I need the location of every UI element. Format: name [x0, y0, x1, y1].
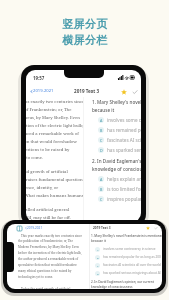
staticText: 1. Mary Shelley's novel Frankenstein is …	[91, 234, 162, 243]
button[interactable]: 2019-2021	[29, 88, 55, 94]
button[interactable]: A	[92, 174, 141, 184]
staticText: C	[100, 197, 103, 202]
staticText: fascinates AI scientists all over the wo…	[103, 263, 161, 267]
staticText: This year marks exactly two centuries si…	[26, 99, 83, 161]
staticText: B	[97, 256, 99, 259]
staticText: D	[97, 272, 99, 275]
staticText: 2019-2021	[27, 226, 43, 230]
staticText: 2. In David Eagleman's opinion, our curr…	[92, 158, 141, 172]
staticText: B	[100, 128, 103, 133]
staticText: has remained popular for as long as 200 …	[107, 127, 141, 133]
staticText: helps explain artificial intelligence	[107, 176, 141, 182]
staticText: involves some controversy in science	[107, 117, 141, 123]
staticText: 2019-2021	[33, 88, 54, 94]
staticText: Today, the rapid growth of artificial in…	[18, 287, 84, 289]
button[interactable]: Favourite	[119, 87, 128, 96]
button[interactable]: C	[92, 135, 141, 145]
staticText: 19:57	[33, 75, 45, 81]
button[interactable]: Mark as done	[153, 225, 159, 231]
staticText: 2. In David Eagleman's opinion, our curr…	[91, 280, 162, 289]
staticText: inspires popular speculative fiction	[107, 196, 141, 202]
staticText: 2019 Text 3	[93, 226, 111, 230]
staticText: This year marks exactly two centuries si…	[18, 234, 84, 279]
button[interactable]: C	[92, 194, 141, 204]
staticText: 竖屏分页	[62, 17, 108, 31]
staticText: 2019 Text 3	[74, 88, 100, 94]
button[interactable]: Mark as done	[130, 87, 139, 96]
staticText: has sparked serious misgivings about AI	[103, 271, 161, 275]
staticText: C	[100, 138, 103, 143]
button[interactable]: B	[92, 125, 141, 135]
button[interactable]: 2019-2021	[25, 226, 43, 230]
staticText: fascinates AI scientists all over the wo…	[107, 137, 141, 143]
staticText: has remained popular for as long as 200 …	[103, 255, 162, 259]
staticText: is too limited for us to understand AI	[107, 186, 141, 192]
staticText: D	[100, 148, 103, 153]
staticText: involves some controversy in science	[103, 247, 156, 251]
staticText: B	[100, 187, 103, 192]
button[interactable]: D	[91, 269, 162, 277]
button[interactable]: A	[91, 245, 162, 253]
staticText: What is now called artificial general in…	[26, 207, 83, 221]
button[interactable]: Favourite	[145, 225, 151, 231]
staticText: A	[100, 118, 103, 123]
button[interactable]: C	[91, 261, 162, 269]
staticText: 1. Mary Shelley's novel Frankenstein is …	[92, 99, 141, 113]
button[interactable]: Two column layout	[17, 226, 22, 231]
button[interactable]: D	[92, 145, 141, 155]
staticText: C	[97, 264, 99, 267]
button[interactable]: B	[91, 253, 162, 261]
staticText: Today, the rapid growth of artificial in…	[26, 169, 83, 199]
staticText: A	[97, 248, 99, 251]
staticText: A	[100, 177, 103, 182]
staticText: has sparked serious misgivings about AI	[107, 147, 141, 153]
staticText: 横屏分栏	[62, 33, 108, 47]
button[interactable]: A	[92, 115, 141, 125]
button[interactable]: B	[92, 184, 141, 194]
